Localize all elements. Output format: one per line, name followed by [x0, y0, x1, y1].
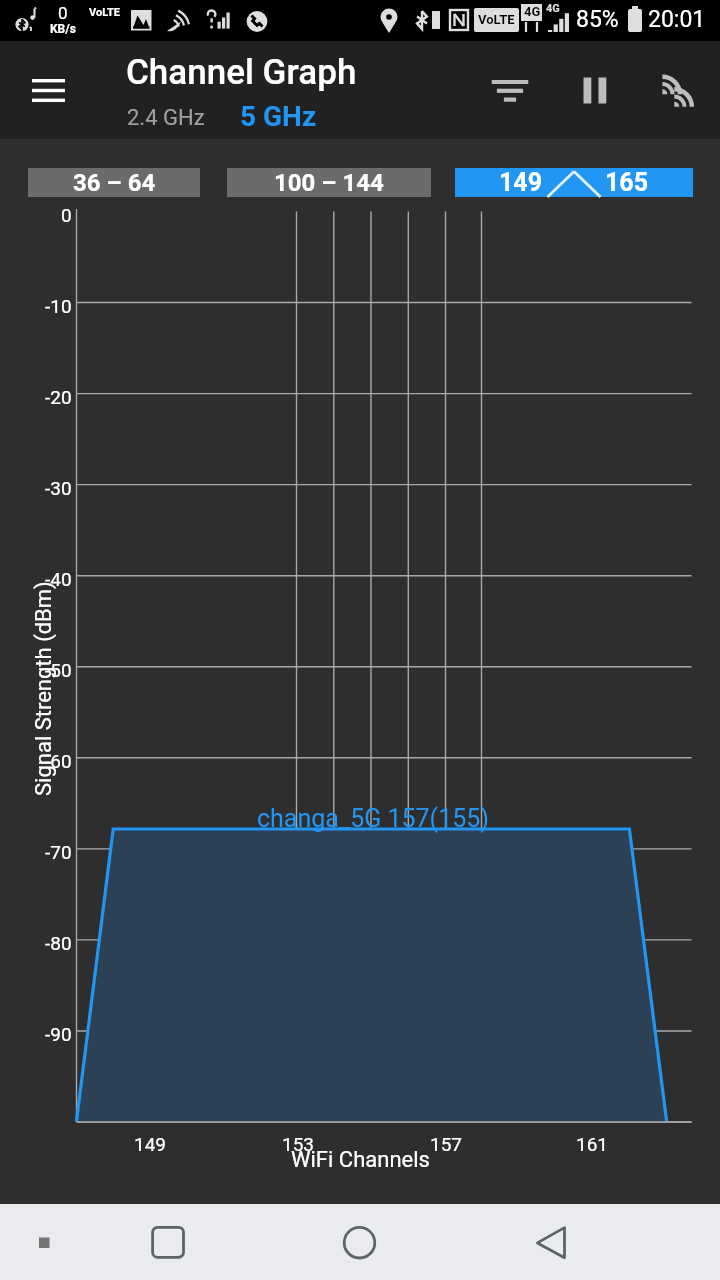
- staticText: -90: [45, 1023, 72, 1045]
- button[interactable]: Switch WiFi band: [646, 58, 711, 123]
- staticText: -40: [45, 568, 72, 590]
- button[interactable]: 2.4 GHz: [114, 99, 218, 137]
- staticText: 149: [134, 1133, 167, 1155]
- staticText: -10: [45, 295, 72, 317]
- button[interactable]: 100 – 144: [227, 168, 431, 197]
- staticText: 100 – 144: [274, 169, 384, 197]
- staticText: 36 – 64: [73, 169, 156, 197]
- button[interactable]: 5 GHz: [226, 95, 330, 137]
- staticText: -70: [45, 841, 72, 863]
- staticText: 149: [499, 168, 543, 197]
- staticText: 0: [61, 204, 72, 226]
- staticText: changa_5G 157(155): [257, 804, 490, 833]
- staticText: 85%: [576, 6, 619, 33]
- staticText: -20: [45, 386, 72, 408]
- button[interactable]: Pause scanning: [562, 58, 627, 123]
- staticText: -30: [45, 477, 72, 499]
- staticText: 5 GHz: [240, 100, 317, 133]
- staticText: 0: [58, 3, 68, 23]
- staticText: 2.4 GHz: [127, 105, 205, 131]
- button[interactable]: Back: [520, 1210, 585, 1275]
- staticText: 165: [605, 168, 649, 197]
- staticText: -80: [45, 932, 72, 954]
- button[interactable]: Home: [328, 1210, 393, 1275]
- staticText: VoLTE: [478, 12, 515, 27]
- button[interactable]: Open navigation drawer: [16, 58, 81, 123]
- button[interactable]: 36 – 64: [28, 168, 200, 197]
- staticText: Signal Strength (dBm): [31, 581, 57, 796]
- staticText: Channel Graph: [126, 52, 357, 93]
- staticText: 20:01: [648, 6, 706, 33]
- staticText: VoLTE: [89, 6, 121, 19]
- button[interactable]: 149: [455, 168, 693, 197]
- staticText: 153: [282, 1133, 315, 1155]
- staticText: -60: [45, 750, 72, 772]
- button[interactable]: Recent apps: [136, 1210, 201, 1275]
- staticText: WiFi Channels: [291, 1147, 430, 1173]
- button[interactable]: More options: [12, 1210, 77, 1275]
- staticText: -50: [45, 659, 72, 681]
- staticText: 4G: [524, 4, 541, 19]
- staticText: KB/s: [50, 22, 76, 36]
- staticText: 4G: [546, 2, 560, 15]
- staticText: 161: [576, 1133, 609, 1155]
- button[interactable]: Filter access points: [477, 58, 542, 123]
- staticText: 157: [430, 1133, 463, 1155]
